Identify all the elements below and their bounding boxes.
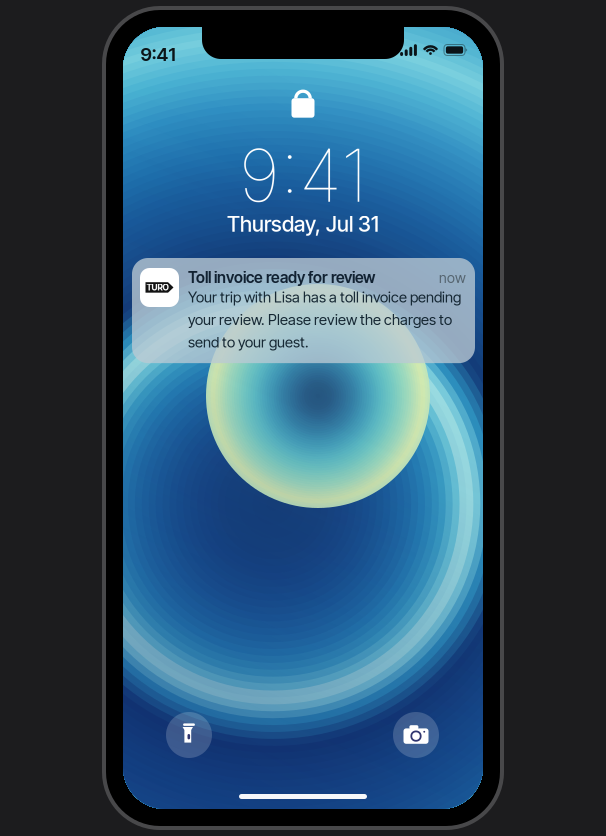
staticText: Toll invoice ready for review [188,268,375,287]
staticText: TURO [146,282,168,293]
staticText: 9:41 [140,43,175,66]
staticText: Your trip with Lisa has a toll invoice p… [188,288,461,351]
button[interactable]: TURO [132,258,475,363]
staticText: Thursday, Jul 31 [227,211,379,237]
staticText: 9:41 [239,132,367,219]
button[interactable]: Camera [393,712,439,758]
button[interactable]: Flashlight [166,712,212,758]
staticText: now [439,269,466,286]
